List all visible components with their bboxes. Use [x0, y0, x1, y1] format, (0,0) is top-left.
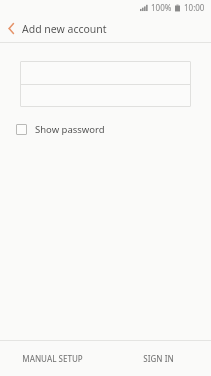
staticText: 10:00	[184, 2, 205, 13]
button[interactable]	[20, 61, 191, 84]
staticText: MANUAL SETUP	[22, 353, 83, 364]
button[interactable]: Show password	[14, 120, 107, 139]
staticText: Show password	[35, 123, 105, 136]
staticText: 100%	[151, 2, 172, 13]
button[interactable]: SIGN IN	[105, 341, 211, 376]
staticText: SIGN IN	[143, 353, 174, 364]
staticText: Add new account	[22, 22, 107, 36]
button[interactable]	[20, 85, 191, 107]
button[interactable]: Navigate up	[0, 15, 22, 42]
button[interactable]: MANUAL SETUP	[0, 341, 105, 376]
